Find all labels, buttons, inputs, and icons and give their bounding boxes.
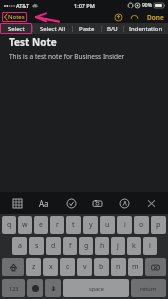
button[interactable]: j — [111, 237, 125, 255]
button[interactable]: b — [94, 258, 109, 276]
staticText: q — [7, 220, 12, 230]
button[interactable]: x — [43, 258, 58, 276]
staticText: h — [100, 241, 105, 251]
staticText: AT&T — [16, 2, 30, 9]
button[interactable]: z — [26, 258, 41, 276]
button[interactable]: Notes — [4, 13, 25, 21]
button[interactable]: Backspace — [145, 258, 166, 276]
staticText: space — [89, 285, 104, 292]
staticText: r — [56, 220, 59, 230]
staticText: k — [132, 241, 136, 251]
button[interactable]: i — [117, 216, 132, 234]
staticText: g — [84, 241, 89, 251]
button[interactable]: r — [50, 216, 64, 234]
button[interactable]: Indentation — [124, 23, 168, 34]
staticText: t — [72, 220, 75, 230]
button[interactable]: B/U — [102, 23, 123, 34]
button[interactable]: c — [60, 258, 75, 276]
staticText: 1:07 PM — [74, 2, 95, 9]
button[interactable]: Select All — [33, 23, 72, 34]
staticText: Paste — [79, 25, 95, 33]
button[interactable]: Select — [0, 23, 32, 34]
button[interactable]: Dictate — [45, 279, 61, 297]
button[interactable]: n — [111, 258, 126, 276]
button[interactable]: m — [128, 258, 143, 276]
staticText: a — [18, 241, 22, 251]
staticText: w — [22, 220, 28, 230]
button[interactable]: return — [131, 279, 166, 297]
button[interactable]: s — [29, 237, 44, 255]
button[interactable]: l — [143, 237, 157, 255]
button[interactable]: w — [18, 216, 32, 234]
staticText: z — [32, 262, 36, 272]
button[interactable]: v — [77, 258, 92, 276]
staticText: u — [105, 220, 110, 230]
button[interactable]: space — [63, 279, 129, 297]
staticText: Indentation — [129, 25, 163, 33]
button[interactable]: Table — [10, 196, 24, 210]
staticText: m — [132, 262, 139, 272]
button[interactable]: More — [130, 13, 139, 22]
button[interactable]: g — [79, 237, 93, 255]
button[interactable]: Paste — [73, 23, 101, 34]
staticText: 90% — [142, 2, 152, 9]
button[interactable]: q — [2, 216, 16, 234]
button[interactable]: p — [151, 216, 166, 234]
staticText: p — [156, 220, 161, 230]
button[interactable]: Checklist — [64, 196, 78, 210]
staticText: Select — [8, 25, 25, 33]
button[interactable]: t — [66, 216, 81, 234]
button[interactable]: e — [34, 216, 48, 234]
button[interactable]: 123 — [2, 279, 25, 297]
button[interactable]: Emoji — [27, 279, 43, 297]
button[interactable]: Markup — [117, 196, 131, 210]
staticText: Notes — [8, 13, 25, 21]
button[interactable]: h — [95, 237, 109, 255]
button[interactable]: f — [63, 237, 77, 255]
staticText: y — [89, 220, 93, 230]
staticText: i — [124, 220, 126, 230]
staticText: s — [35, 241, 39, 251]
staticText: v — [83, 262, 87, 272]
button[interactable]: o — [134, 216, 149, 234]
staticText: b — [99, 262, 104, 272]
staticText: Aa — [39, 198, 49, 209]
staticText: 123 — [9, 285, 19, 292]
staticText: n — [116, 262, 121, 272]
staticText: l — [149, 241, 151, 251]
staticText: e — [39, 220, 43, 230]
button[interactable]: k — [127, 237, 141, 255]
staticText: o — [139, 220, 144, 230]
staticText: Select All — [40, 25, 66, 33]
staticText: B/U — [107, 25, 118, 33]
button[interactable]: Close — [144, 196, 158, 210]
button[interactable]: y — [83, 216, 98, 234]
staticText: This is a test note for Business Insider — [9, 52, 125, 61]
button[interactable]: a — [12, 237, 27, 255]
staticText: Done — [147, 13, 164, 22]
staticText: d — [51, 241, 56, 251]
staticText: c — [66, 262, 70, 272]
button[interactable]: Camera — [90, 196, 104, 210]
button[interactable]: Done — [146, 13, 165, 22]
button[interactable]: Format — [37, 196, 51, 210]
button[interactable]: u — [100, 216, 115, 234]
staticText: j — [117, 241, 119, 251]
button[interactable]: Share — [114, 13, 123, 22]
staticText: Test Note — [9, 35, 57, 49]
staticText: x — [49, 262, 53, 272]
staticText: return — [140, 285, 157, 292]
button[interactable]: d — [46, 237, 61, 255]
button[interactable]: Shift — [2, 258, 24, 276]
staticText: f — [69, 241, 72, 251]
